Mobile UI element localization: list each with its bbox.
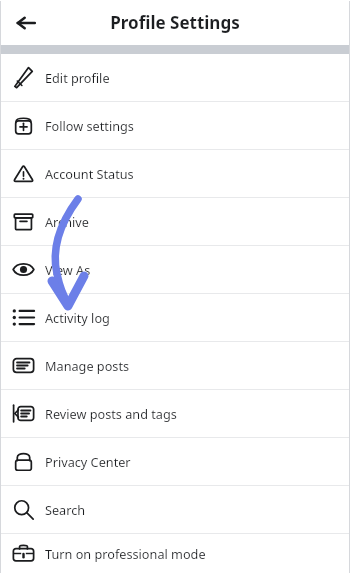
- staticText: Profile Settings: [0, 11, 350, 34]
- button[interactable]: Review posts and tags: [0, 390, 350, 437]
- staticText: Search: [45, 501, 86, 518]
- staticText: Edit profile: [45, 69, 110, 86]
- button[interactable]: Privacy Center: [0, 438, 350, 485]
- button[interactable]: Account Status: [0, 150, 350, 197]
- button[interactable]: Archive: [0, 198, 350, 245]
- button[interactable]: Edit profile: [0, 54, 350, 101]
- staticText: Manage posts: [45, 357, 130, 374]
- staticText: Privacy Center: [45, 453, 131, 470]
- staticText: Follow settings: [45, 117, 134, 134]
- staticText: Account Status: [45, 165, 134, 182]
- staticText: Activity log: [45, 309, 110, 326]
- button[interactable]: Activity log: [0, 294, 350, 341]
- button[interactable]: Manage posts: [0, 342, 350, 389]
- staticText: Review posts and tags: [45, 405, 177, 422]
- button[interactable]: Turn on professional mode: [0, 534, 350, 573]
- staticText: Archive: [45, 213, 89, 230]
- button[interactable]: View As: [0, 246, 350, 293]
- staticText: View As: [45, 261, 91, 278]
- button[interactable]: Back: [8, 5, 44, 41]
- button[interactable]: Search: [0, 486, 350, 533]
- staticText: Turn on professional mode: [45, 545, 206, 562]
- button[interactable]: Follow settings: [0, 102, 350, 149]
